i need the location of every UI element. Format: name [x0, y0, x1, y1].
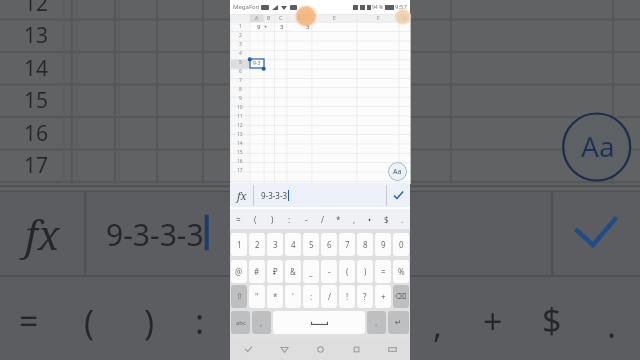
button[interactable]: .	[394, 209, 410, 230]
button[interactable]: Insert function	[230, 183, 253, 207]
button[interactable]: 4	[285, 233, 301, 256]
staticText: fx	[237, 188, 247, 203]
button[interactable]: :	[281, 209, 298, 230]
staticText: /	[321, 214, 324, 225]
button[interactable]: Confirm	[387, 183, 410, 207]
staticText: @	[235, 266, 243, 277]
button[interactable]: )	[264, 209, 281, 230]
staticText: A	[255, 15, 259, 22]
button[interactable]: Hide keyboard	[230, 338, 266, 360]
staticText: 14	[24, 54, 49, 83]
staticText: 16	[237, 158, 243, 165]
button[interactable]: )	[357, 260, 373, 283]
button[interactable]: *	[330, 209, 346, 230]
button[interactable]: .	[367, 311, 386, 334]
button[interactable]: 0	[393, 233, 409, 256]
staticText: 11	[237, 113, 243, 120]
staticText: 1	[237, 239, 242, 250]
button[interactable]: •	[362, 209, 378, 230]
staticText: =	[19, 298, 39, 344]
button[interactable]: #	[249, 260, 265, 283]
staticText: 6	[327, 239, 332, 250]
button[interactable]: Space	[273, 311, 365, 334]
staticText: F	[377, 15, 380, 22]
button[interactable]: 5	[303, 233, 319, 256]
staticText: 13	[237, 131, 243, 138]
button[interactable]: &	[285, 260, 301, 283]
button[interactable]: abc	[231, 311, 250, 334]
button[interactable]: Backspace	[393, 285, 409, 308]
staticText: &	[290, 266, 296, 277]
button[interactable]: Home	[302, 338, 338, 360]
staticText: =	[381, 266, 386, 277]
staticText: +	[381, 291, 386, 302]
button[interactable]: ?	[357, 285, 373, 308]
staticText: 7	[239, 77, 242, 84]
staticText: "	[255, 291, 259, 302]
button[interactable]: 6	[321, 233, 337, 256]
button[interactable]: Change keyboard	[374, 338, 410, 360]
staticText: Aa	[393, 167, 402, 177]
button[interactable]: 2	[249, 233, 265, 256]
staticText: :	[288, 214, 291, 225]
button[interactable]: ,	[346, 209, 362, 230]
button[interactable]: "	[249, 285, 265, 308]
staticText: 8	[363, 239, 368, 250]
button[interactable]: 9	[375, 233, 391, 256]
staticText: B	[267, 15, 271, 22]
button[interactable]: -	[321, 260, 337, 283]
button[interactable]: Text formatting	[388, 162, 407, 181]
staticText: ⇧	[236, 292, 243, 301]
staticText: 3	[239, 41, 242, 48]
staticText: 9-3	[253, 60, 261, 67]
staticText: _	[309, 266, 313, 277]
staticText: 3	[280, 23, 284, 31]
button[interactable]: ₽	[267, 260, 283, 283]
staticText: 5	[239, 59, 242, 66]
button[interactable]: Back	[266, 338, 302, 360]
button[interactable]: (	[247, 209, 264, 230]
button[interactable]: =	[230, 209, 247, 230]
button[interactable]: /	[314, 209, 330, 230]
staticText: (	[346, 266, 349, 277]
staticText: )	[144, 299, 155, 345]
button[interactable]: '	[285, 285, 301, 308]
button[interactable]: =	[375, 260, 391, 283]
button[interactable]: Recent apps	[338, 338, 374, 360]
button[interactable]: 8	[357, 233, 373, 256]
button[interactable]: 9-3	[250, 59, 264, 68]
button[interactable]: 1	[231, 233, 247, 256]
staticText: =	[236, 214, 241, 225]
button[interactable]: Shift	[231, 285, 247, 308]
staticText: 9-3-3-3	[261, 190, 288, 201]
staticText: (	[254, 214, 257, 225]
button[interactable]: @	[231, 260, 247, 283]
button[interactable]: 9-3-3-3	[261, 183, 386, 207]
staticText: •	[368, 214, 372, 225]
staticText: 7	[345, 239, 350, 250]
button[interactable]: 7	[339, 233, 355, 256]
staticText: ₽	[273, 266, 278, 277]
staticText: 9	[239, 95, 242, 102]
button[interactable]: Enter	[388, 311, 409, 334]
staticText: .	[401, 214, 404, 225]
staticText: %	[398, 266, 405, 277]
staticText: 94 %	[372, 4, 384, 11]
staticText: ⌫	[395, 292, 407, 301]
button[interactable]: /	[321, 285, 337, 308]
button[interactable]: (	[339, 260, 355, 283]
staticText: #	[254, 266, 260, 277]
button[interactable]: ,	[252, 311, 271, 334]
staticText: 2	[239, 32, 242, 39]
button[interactable]: :	[303, 285, 319, 308]
button[interactable]: -	[298, 209, 314, 230]
staticText: E	[333, 15, 336, 22]
button[interactable]: $	[378, 209, 394, 230]
button[interactable]: *	[267, 285, 283, 308]
button[interactable]: 3	[267, 233, 283, 256]
button[interactable]: _	[303, 260, 319, 283]
button[interactable]: +	[375, 285, 391, 308]
button[interactable]: %	[393, 260, 409, 283]
staticText: ↵	[395, 318, 402, 327]
button[interactable]: !	[339, 285, 355, 308]
